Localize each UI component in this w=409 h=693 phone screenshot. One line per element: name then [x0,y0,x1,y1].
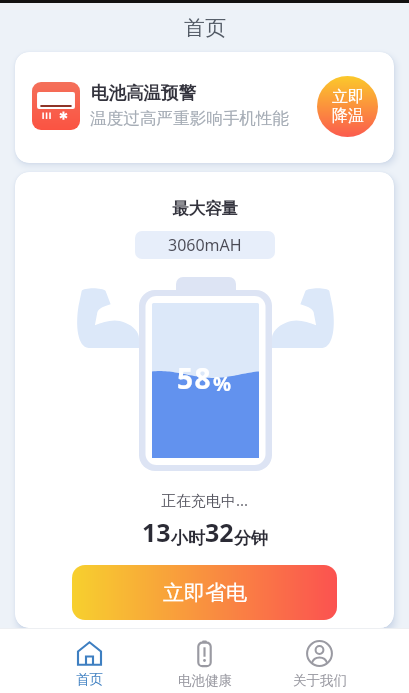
button[interactable]: 立即 降温 [317,76,378,137]
staticText: 13 [142,515,171,549]
staticText: 32 [205,515,234,549]
staticText: 关于我们 [293,672,347,689]
staticText: 首页 [184,15,226,41]
staticText: 正在充电中... [161,490,249,510]
staticText: 电池高温预警 [91,82,196,104]
staticText: 58 [177,359,213,397]
staticText: 立即 降温 [332,87,364,126]
staticText: 立即省电 [163,580,247,606]
staticText: 小时 [171,528,205,549]
staticText: 温度过高严重影响手机性能 [90,108,290,129]
staticText: 最大容量 [172,198,238,219]
button[interactable]: 立即省电 [72,565,337,620]
button[interactable]: 首页 [32,629,147,693]
button[interactable]: 空调降温 [15,52,394,163]
staticText: 分钟 [234,528,268,549]
button[interactable]: 关于我们 [262,629,377,693]
other: 空调降温 [32,82,80,130]
staticText: 电池健康 [178,672,232,689]
staticText: 首页 [76,671,103,688]
staticText: % [213,370,232,397]
button[interactable]: 电池健康 [147,629,262,693]
staticText: 3060mAH [168,234,242,256]
